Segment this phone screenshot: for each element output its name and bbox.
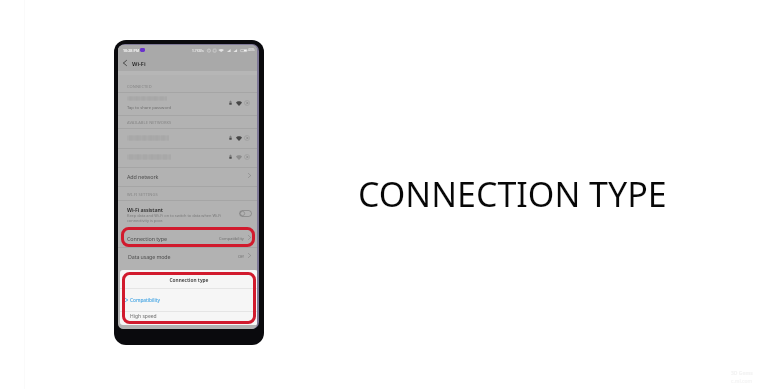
staticText: 10:28 PM xyxy=(123,48,140,53)
staticText: Tap to share password xyxy=(127,105,172,111)
staticText: 43% xyxy=(248,48,255,52)
button[interactable]: Back xyxy=(119,56,131,69)
staticText: High speed xyxy=(130,313,157,320)
button[interactable]: Add network xyxy=(118,167,257,186)
staticText: WI-FI SETTINGS xyxy=(127,192,158,197)
button[interactable]: Wi-Fi assistant xyxy=(118,200,257,228)
staticText: CONNECTED xyxy=(127,84,152,89)
button[interactable]: Wi-Fi assistant switch xyxy=(239,210,252,217)
staticText: Wi-Fi xyxy=(132,60,146,68)
staticText: AVAILABLE NETWORKS xyxy=(127,120,172,125)
staticText: Connection type xyxy=(127,235,167,242)
staticText: 1.7KB/s xyxy=(192,48,204,52)
staticText: Keep data and Wi-Fi on to switch to data… xyxy=(127,213,222,223)
staticText: Connection type xyxy=(120,277,257,283)
staticText: c.ml.com xyxy=(731,378,753,385)
button[interactable]: Connection type xyxy=(118,228,257,248)
staticText: Compatibility xyxy=(130,297,160,304)
staticText: CONNECTION TYPE xyxy=(358,171,667,217)
button[interactable]: High speed xyxy=(120,311,257,325)
staticText: Add network xyxy=(127,173,159,180)
staticText: Wi-Fi assistant xyxy=(127,206,163,213)
staticText: 3D Gems xyxy=(731,370,753,377)
staticText: Data usage mode xyxy=(128,253,171,260)
button[interactable]: Compatibility xyxy=(120,288,257,311)
button[interactable]: Data usage mode xyxy=(118,247,257,265)
staticText: Compatibility xyxy=(219,236,244,241)
staticText: Off xyxy=(238,254,244,259)
